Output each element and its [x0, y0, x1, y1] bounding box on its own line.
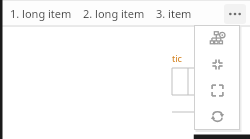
- staticText: 3. item: [156, 6, 192, 21]
- button[interactable]: Refresh: [194, 103, 240, 129]
- button[interactable]: 1. long item: [9, 4, 73, 23]
- button[interactable]: Expand to full screen: [194, 77, 240, 103]
- button[interactable]: Hierarchy view: [194, 25, 240, 51]
- staticText: tic: [172, 52, 182, 64]
- button[interactable]: 2. long item: [82, 4, 146, 23]
- button[interactable]: Collapse: [194, 51, 240, 77]
- button[interactable]: 3. item: [155, 4, 193, 23]
- staticText: 1. long item: [10, 6, 72, 21]
- staticText: 2. long item: [83, 6, 145, 21]
- button[interactable]: More options: [224, 4, 246, 24]
